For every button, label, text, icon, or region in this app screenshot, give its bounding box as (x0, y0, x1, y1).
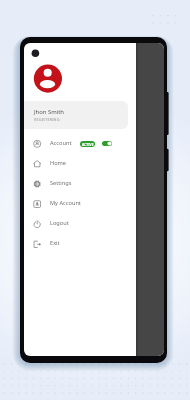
button[interactable] (24, 101, 128, 129)
button[interactable]: Exit (24, 234, 136, 254)
button[interactable]: Logout (24, 214, 136, 234)
staticText: Jhon Smith (34, 108, 65, 116)
staticText: Logout (50, 219, 69, 227)
staticText: ACTIVE (82, 142, 94, 146)
button[interactable]: Home (24, 154, 136, 174)
button[interactable]: My Account (24, 194, 136, 214)
staticText: Settings (50, 179, 72, 187)
staticText: Exit (50, 239, 60, 247)
staticText: Account (50, 139, 72, 147)
button[interactable]: ACTIVE (80, 141, 95, 147)
button[interactable]: Toggle account active (102, 141, 112, 146)
button[interactable]: Account (24, 134, 136, 154)
staticText: My Account (50, 199, 81, 207)
staticText: REGISTERING (34, 117, 60, 122)
staticText: Home (50, 159, 67, 167)
button[interactable]: Settings (24, 174, 136, 194)
